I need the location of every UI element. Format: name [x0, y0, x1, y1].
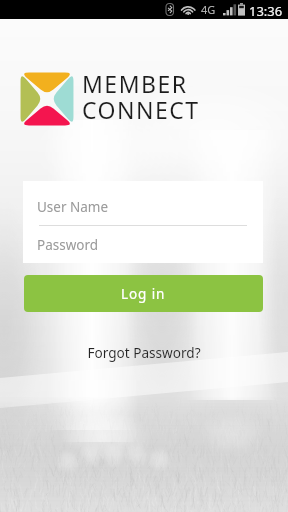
staticText: 4G [201, 2, 216, 17]
staticText: User Name [37, 198, 109, 216]
button[interactable]: Password [23, 225, 263, 263]
staticText: MEMBER [82, 68, 188, 99]
button[interactable]: User Name [23, 181, 263, 225]
staticText: Log in [121, 285, 166, 303]
staticText: Forgot Password? [87, 343, 201, 362]
staticText: Password [37, 236, 99, 254]
button[interactable]: Forgot Password? [87, 343, 201, 362]
staticText: CONNECT [82, 94, 200, 125]
staticText: 13:36 [249, 2, 283, 20]
button[interactable]: Log in [24, 275, 263, 312]
